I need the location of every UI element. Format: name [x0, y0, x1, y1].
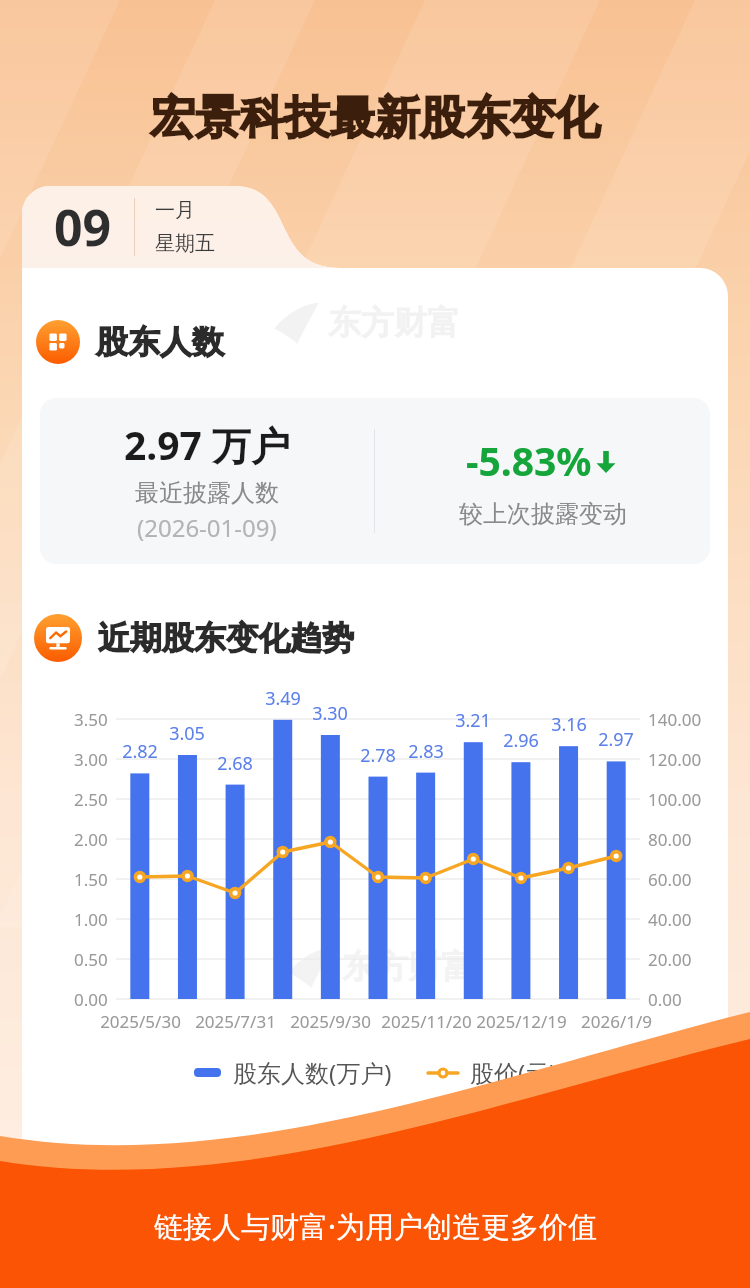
staticText: 3.05: [169, 721, 205, 746]
staticText: 2.97 万户: [124, 418, 291, 471]
staticText: 80.00: [648, 828, 692, 851]
staticText: 3.21: [455, 708, 491, 733]
button[interactable]: 股东人数(万户): [194, 1056, 392, 1089]
staticText: 近期股东变化趋势: [98, 618, 354, 658]
staticText: 股价(元): [470, 1056, 557, 1089]
staticText: 股东人数(万户): [233, 1056, 392, 1089]
staticText: 2025/9/30: [290, 1010, 371, 1033]
staticText: 3.30: [312, 701, 348, 726]
staticText: 3.50: [74, 708, 108, 731]
staticText: 最近披露人数: [135, 478, 279, 508]
staticText: 2.97: [598, 727, 634, 752]
staticText: -5.83%: [466, 434, 592, 487]
staticText: 2025/11/20: [381, 1010, 472, 1033]
staticText: 120.00: [648, 748, 702, 771]
staticText: 2025/12/19: [476, 1010, 567, 1033]
staticText: 2.83: [408, 739, 444, 764]
button[interactable]: 近期股东变化趋势: [34, 614, 354, 662]
button[interactable]: 2.97 万户: [40, 398, 710, 564]
staticText: 3.49: [265, 686, 301, 711]
staticText: (2026-01-09): [137, 511, 277, 544]
staticText: 40.00: [648, 908, 692, 931]
staticText: 2025/7/31: [195, 1010, 276, 1033]
staticText: 东方财富: [328, 302, 460, 344]
staticText: 股东人数: [96, 322, 224, 362]
other: 股东人数: [36, 320, 80, 364]
button[interactable]: 09: [54, 186, 302, 268]
staticText: 2026/1/9: [581, 1010, 652, 1033]
staticText: 100.00: [648, 788, 702, 811]
staticText: 60.00: [648, 868, 692, 891]
staticText: 一月: [155, 198, 195, 223]
staticText: 1.00: [74, 908, 108, 931]
staticText: 2.82: [122, 739, 158, 764]
staticText: 2.68: [217, 751, 253, 776]
staticText: 140.00: [648, 708, 702, 731]
staticText: 2.00: [74, 828, 108, 851]
staticText: 星期五: [155, 231, 215, 256]
staticText: 2.78: [360, 743, 396, 768]
staticText: 较上次披露变动: [459, 499, 627, 529]
staticText: 宏景科技最新股东变化: [150, 90, 600, 147]
staticText: 20.00: [648, 948, 692, 971]
staticText: 3.00: [74, 748, 108, 771]
staticText: 链接人与财富·为用户创造更多价值: [154, 1206, 597, 1246]
staticText: 0.00: [74, 988, 108, 1011]
staticText: 2.96: [503, 728, 539, 753]
other: 近期股东变化趋势: [34, 614, 82, 662]
staticText: 1.50: [74, 868, 108, 891]
staticText: 3.16: [551, 712, 587, 737]
staticText: 东方财富: [342, 946, 474, 988]
staticText: 0.50: [74, 948, 108, 971]
staticText: 0.00: [648, 988, 682, 1011]
button[interactable]: 股价(元): [428, 1056, 557, 1089]
staticText: 2025/5/30: [100, 1010, 181, 1033]
button[interactable]: 股东人数: [36, 320, 224, 364]
staticText: 2.50: [74, 788, 108, 811]
staticText: 09: [54, 193, 112, 261]
